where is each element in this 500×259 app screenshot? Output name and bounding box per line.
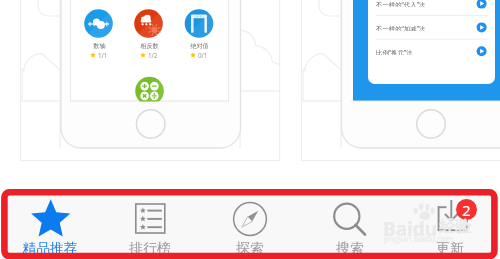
staticText: 绝对值	[190, 42, 209, 50]
staticText: 1/2	[148, 51, 158, 59]
staticText: Baidu	[383, 216, 438, 242]
staticText: 1/1	[98, 51, 108, 59]
button[interactable]: Explore	[200, 190, 300, 259]
staticText: 搜索	[336, 240, 364, 257]
staticText: 精品推荐	[22, 240, 78, 257]
staticText: jingyan.baidu.com	[384, 233, 454, 244]
staticText: 0/1	[198, 51, 208, 59]
staticText: 不一样的“代入”法	[376, 0, 426, 7]
staticText: 数轴	[93, 42, 106, 50]
button[interactable]: Updates	[400, 190, 500, 259]
staticText: 不一样的“加减”法	[376, 24, 426, 31]
staticText: 2	[462, 200, 471, 220]
staticText: 比例“换元”法	[376, 48, 413, 55]
staticText: 经验	[439, 217, 471, 237]
staticText: 更新	[436, 240, 464, 257]
button[interactable]: Search	[300, 190, 400, 259]
button[interactable]: Featured	[0, 190, 100, 259]
button[interactable]: Ranking	[100, 190, 200, 259]
staticText: 排行榜	[129, 240, 171, 257]
staticText: 相反数	[140, 42, 159, 50]
staticText: 探索	[236, 240, 264, 257]
